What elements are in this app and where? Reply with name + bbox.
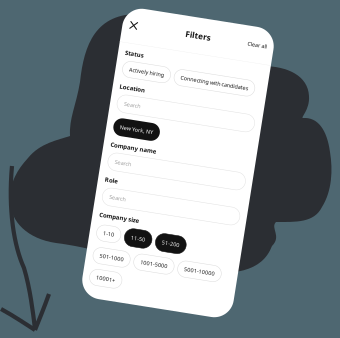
button[interactable]: Search — [7, 18, 340, 62]
staticText: Company name — [7, 134, 121, 153]
button[interactable]: Search — [7, 249, 340, 293]
staticText: Search — [24, 262, 65, 280]
staticText: Company size — [7, 308, 106, 327]
button[interactable]: Search — [7, 162, 340, 206]
button[interactable]: New York, NY — [7, 76, 122, 120]
staticText: New York, NY — [23, 89, 106, 107]
staticText: Role — [7, 221, 39, 240]
